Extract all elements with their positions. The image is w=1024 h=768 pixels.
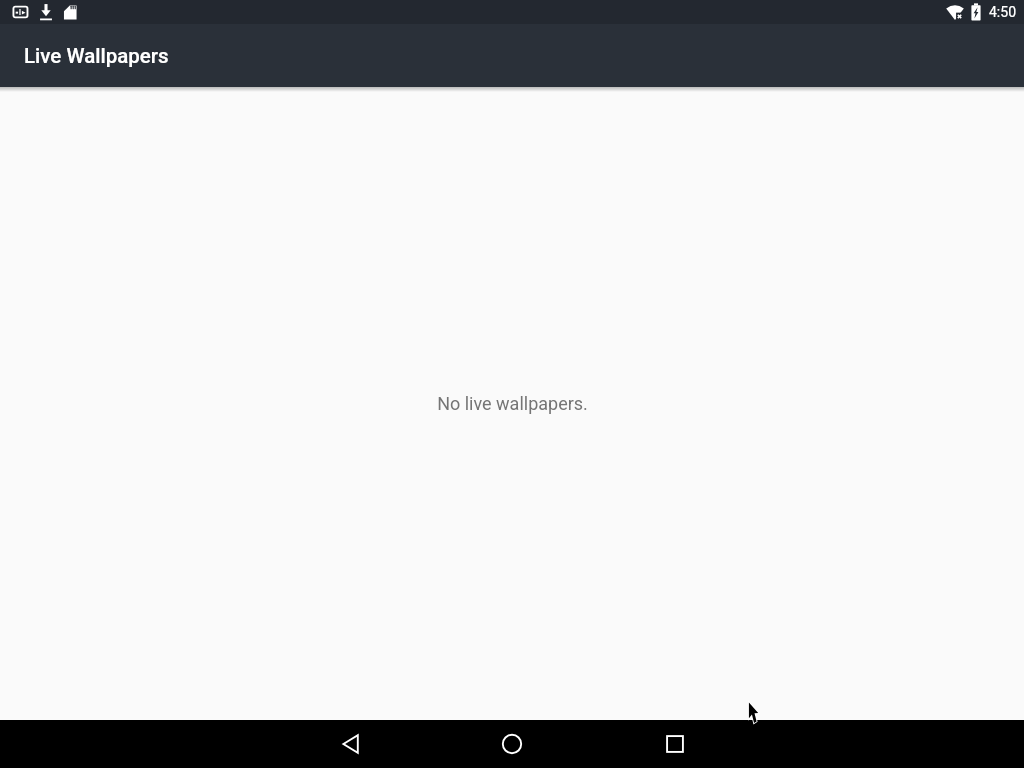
staticText: No live wallpapers. [437, 393, 588, 414]
button[interactable]: Home [464, 720, 560, 768]
other: Download [37, 3, 55, 21]
staticText: 4:50 [989, 4, 1016, 20]
button[interactable]: Back [303, 720, 399, 768]
other: Wi-Fi disconnected [946, 4, 964, 20]
other: SD card [60, 3, 78, 21]
other: Select keyboard [12, 3, 30, 21]
staticText: Live Wallpapers [24, 44, 169, 68]
other: Battery charging [971, 3, 981, 21]
button[interactable]: Recents [627, 720, 723, 768]
